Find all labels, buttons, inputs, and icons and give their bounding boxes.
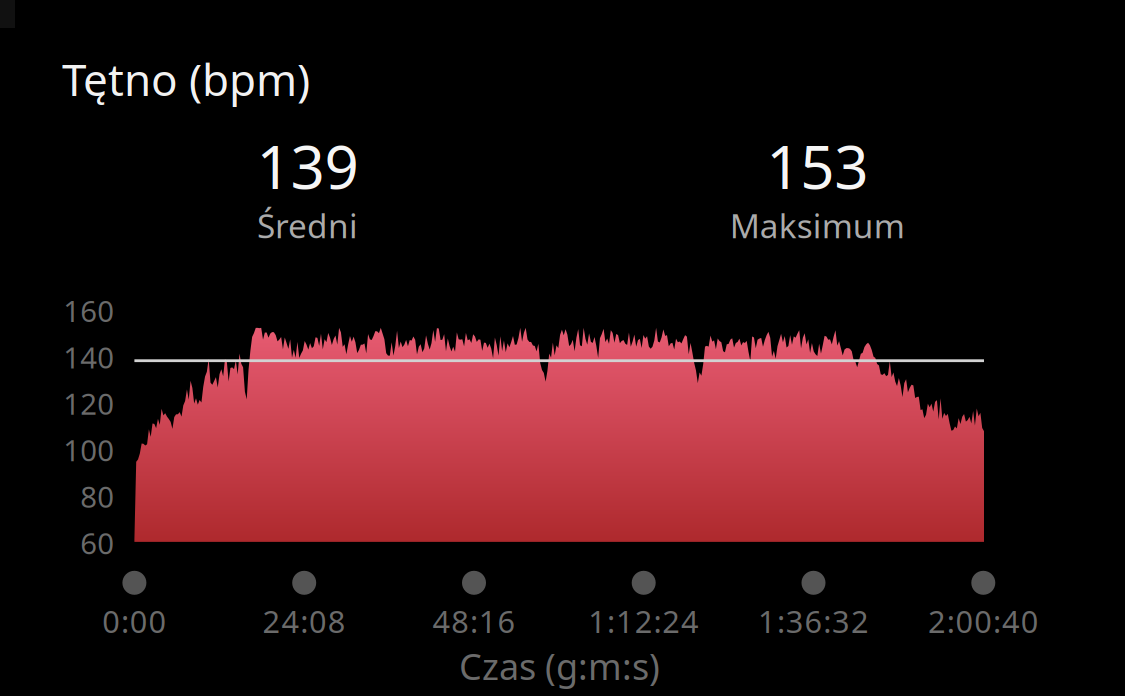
staticText: Czas (g:m:s): [459, 642, 660, 690]
staticText: 140: [63, 337, 114, 376]
staticText: 80: [80, 477, 114, 516]
staticText: 139: [256, 126, 358, 206]
staticText: 160: [63, 291, 114, 330]
button[interactable]: Tętno (bpm) — średnie 139, maksimum 153: [0, 0, 1125, 696]
staticText: Maksimum: [730, 203, 905, 247]
staticText: 153: [766, 126, 868, 206]
staticText: Średni: [257, 203, 358, 247]
staticText: 1:12:24: [588, 601, 699, 641]
staticText: 120: [63, 384, 114, 423]
staticText: 0:00: [102, 601, 167, 641]
staticText: 2:00:40: [928, 601, 1039, 641]
staticText: Tętno (bpm): [62, 50, 310, 108]
staticText: 1:36:32: [758, 601, 869, 641]
staticText: 100: [63, 430, 114, 469]
staticText: 48:16: [432, 601, 516, 641]
staticText: 60: [80, 523, 114, 562]
staticText: 24:08: [263, 601, 346, 641]
